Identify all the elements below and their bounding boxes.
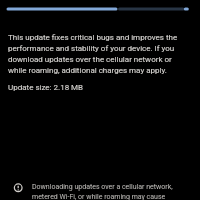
staticText: Downloading updates over a cellular netw… [32, 183, 192, 200]
other: Information [11, 180, 26, 195]
staticText: This update fixes critical bugs and impr… [8, 33, 192, 75]
staticText: Update size: 2.18 MB [8, 83, 84, 92]
